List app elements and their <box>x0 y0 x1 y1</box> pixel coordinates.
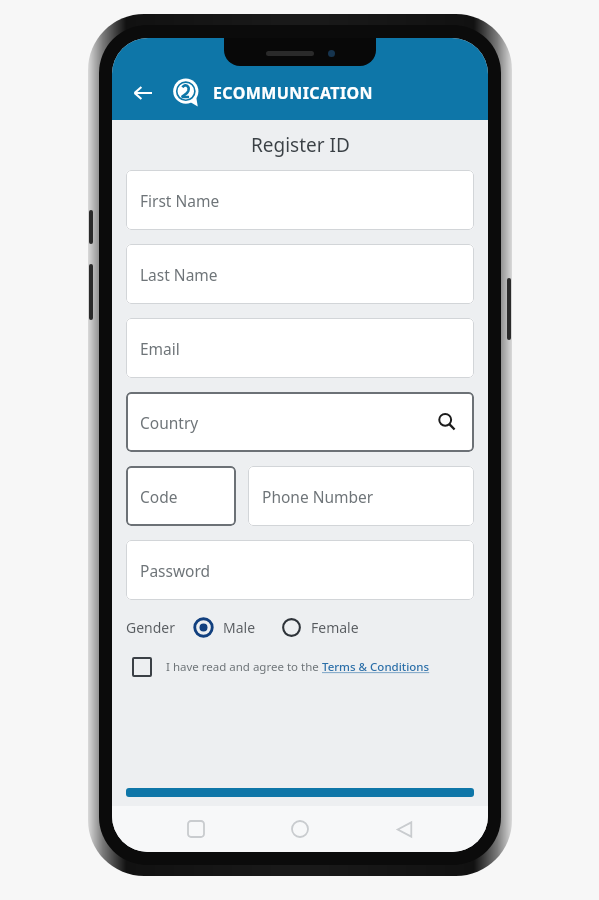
other: Search country <box>434 409 460 435</box>
button[interactable]: Email <box>126 318 474 378</box>
button[interactable]: Female <box>282 618 359 637</box>
staticText: Last Name <box>140 264 218 285</box>
button[interactable]: I have read and agree to the <box>126 657 474 677</box>
button[interactable]: Phone Number <box>248 466 474 526</box>
staticText: Country <box>140 412 199 433</box>
button[interactable]: First Name <box>126 170 474 230</box>
button[interactable]: Back <box>384 809 424 849</box>
staticText: Female <box>311 618 359 637</box>
staticText: Gender <box>126 618 176 637</box>
staticText: Password <box>140 560 211 581</box>
staticText: Code <box>140 486 178 507</box>
button[interactable]: Home <box>280 809 320 849</box>
button[interactable]: Code <box>126 466 236 526</box>
button[interactable]: Password <box>126 540 474 600</box>
button[interactable]: Back <box>126 76 160 110</box>
staticText: Phone Number <box>262 486 374 507</box>
staticText: Email <box>140 338 180 359</box>
button[interactable]: Terms & Conditions <box>322 659 430 675</box>
staticText: Male <box>223 618 256 637</box>
button[interactable]: Male <box>194 618 256 637</box>
button[interactable]: Register <box>126 788 474 797</box>
staticText: Register ID <box>251 132 350 158</box>
staticText: I have read and agree to the <box>166 659 322 675</box>
staticText: ECOMMUNICATION <box>213 82 374 104</box>
button[interactable]: Last Name <box>126 244 474 304</box>
button[interactable]: Recent apps <box>176 809 216 849</box>
button[interactable]: Country <box>126 392 474 452</box>
staticText: First Name <box>140 190 220 211</box>
